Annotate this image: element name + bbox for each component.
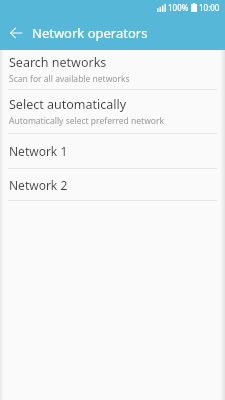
staticText: Automatically select preferred network	[9, 115, 165, 127]
button[interactable]: Select automatically	[0, 90, 225, 133]
staticText: Network 2	[9, 177, 68, 193]
button[interactable]: Back	[4, 21, 28, 45]
staticText: Scan for all available networks	[9, 73, 130, 85]
staticText: 10:00	[199, 2, 220, 13]
staticText: 100%	[168, 2, 189, 13]
button[interactable]: Network 2	[0, 169, 225, 200]
button[interactable]: Search networks	[0, 50, 225, 89]
staticText: Network 1	[9, 143, 68, 159]
staticText: Network operators	[32, 24, 148, 42]
button[interactable]: Network 1	[0, 134, 225, 168]
staticText: Search networks	[9, 54, 107, 71]
staticText: Select automatically	[9, 96, 127, 113]
